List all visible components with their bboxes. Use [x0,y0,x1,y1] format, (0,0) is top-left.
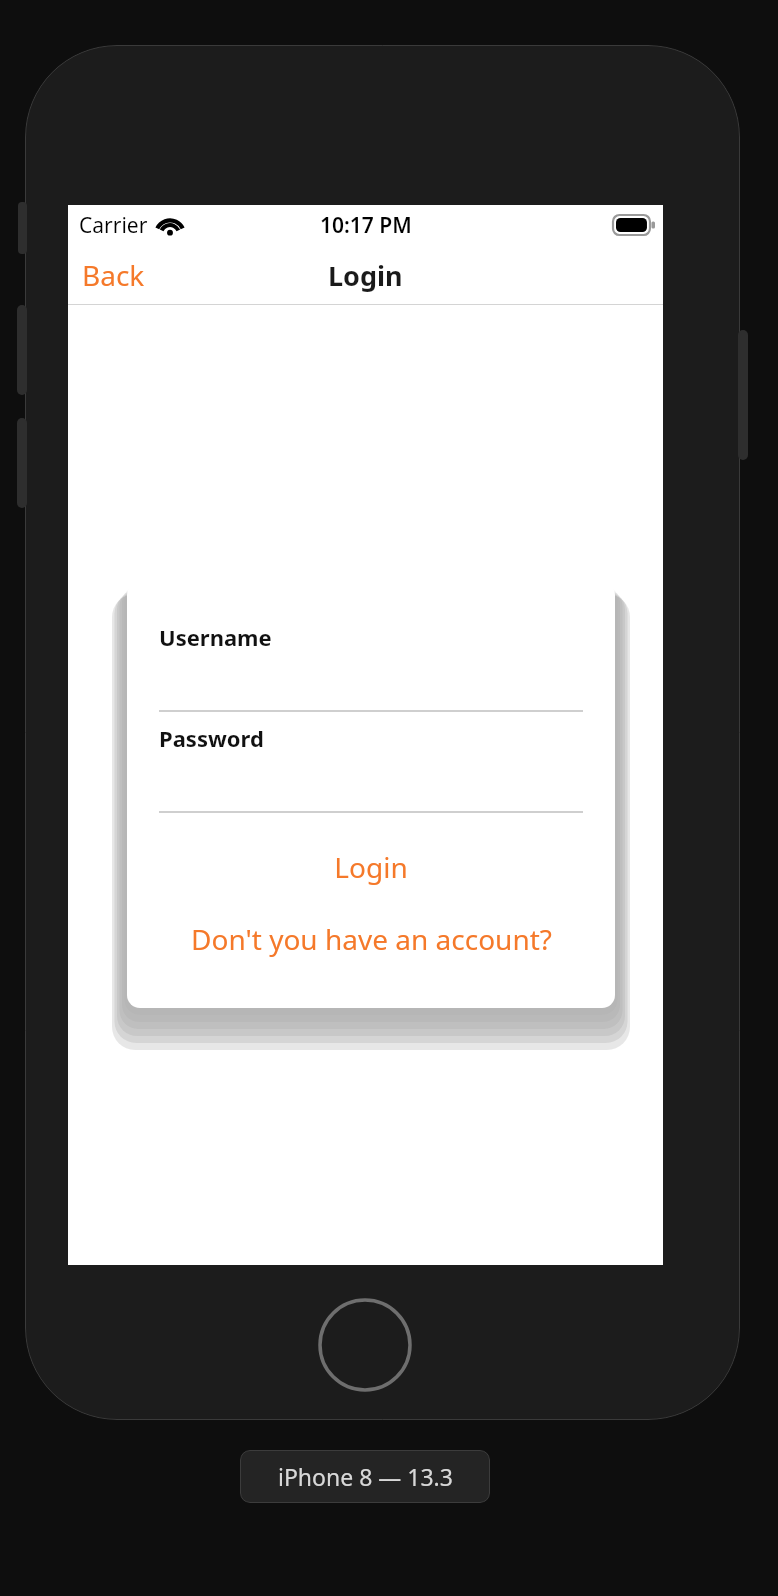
staticText: Password [159,723,264,753]
staticText: Login [328,257,403,294]
staticText: Login [334,848,408,886]
other: Home [318,1298,412,1392]
staticText: Back [82,256,145,294]
button[interactable]: iPhone 8 — 13.3 [240,1450,490,1503]
staticText: Carrier [79,211,148,240]
staticText: 10:17 PM [320,211,412,240]
button[interactable]: Login [127,840,615,894]
staticText: Don't you have an account? [191,920,552,958]
button[interactable]: Back [68,250,159,300]
button[interactable] [159,719,583,812]
button[interactable] [159,618,583,711]
button[interactable]: Don't you have an account? [127,912,615,966]
staticText: Username [159,622,272,652]
staticText: iPhone 8 — 13.3 [278,1461,453,1492]
